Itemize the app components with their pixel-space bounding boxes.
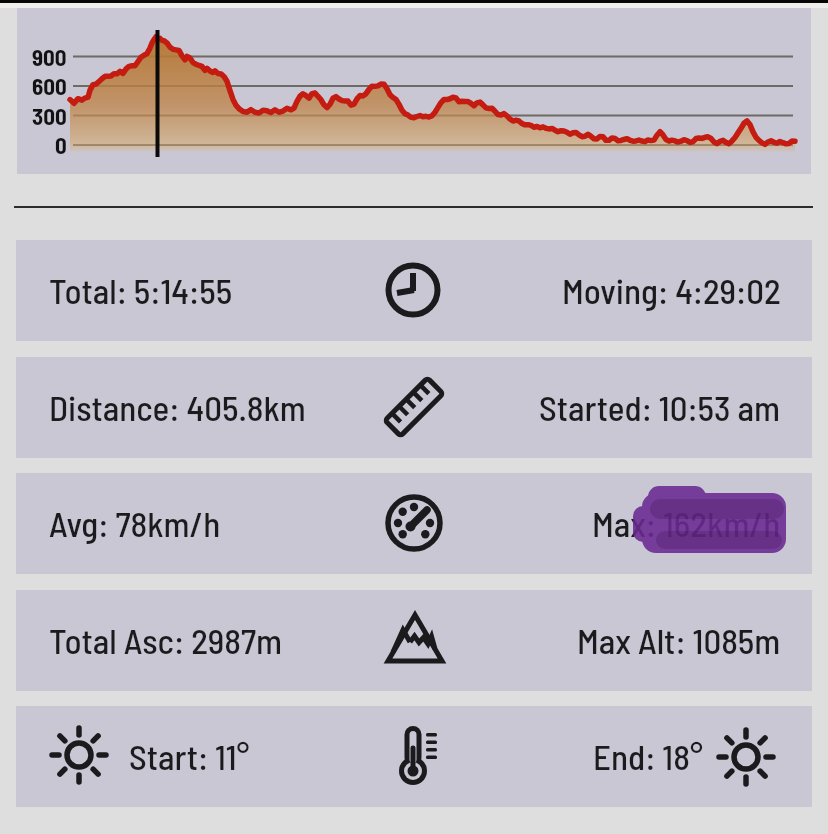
staticText: Total: 5:14:55 (49, 269, 233, 311)
staticText: Max: 162km/h (592, 502, 781, 544)
staticText: End: 18° (593, 735, 703, 777)
staticText: Started: 10:53 am (539, 386, 781, 428)
staticText: Max Alt: 1085m (577, 619, 781, 661)
button[interactable] (16, 473, 812, 574)
button[interactable] (16, 240, 812, 341)
button[interactable] (16, 590, 812, 691)
button[interactable] (16, 357, 812, 458)
staticText: 600 (32, 72, 67, 100)
staticText: 900 (32, 43, 67, 71)
staticText: Moving: 4:29:02 (562, 269, 781, 311)
staticText: 300 (32, 102, 67, 130)
staticText: Distance: 405.8km (49, 386, 306, 428)
button[interactable] (17, 8, 811, 174)
staticText: Total Asc: 2987m (49, 619, 282, 661)
staticText: Avg: 78km/h (49, 502, 221, 544)
staticText: Start: 11° (129, 735, 250, 777)
staticText: 0 (55, 131, 67, 159)
button[interactable] (16, 706, 812, 807)
